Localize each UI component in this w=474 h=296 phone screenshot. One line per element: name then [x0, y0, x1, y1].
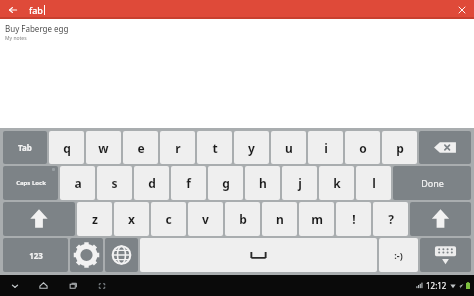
staticText: ?: [388, 211, 394, 227]
staticText: m: [311, 211, 323, 227]
button[interactable]: !: [336, 202, 371, 236]
button[interactable]: a: [60, 166, 95, 200]
button[interactable]: p: [382, 131, 417, 164]
staticText: !: [352, 211, 356, 227]
staticText: l: [372, 175, 376, 191]
staticText: f: [186, 175, 191, 191]
button[interactable]: q: [49, 131, 84, 164]
staticText: r: [175, 140, 181, 156]
staticText: Done: [421, 177, 444, 189]
staticText: p: [396, 140, 404, 156]
button[interactable]: Done: [393, 166, 471, 200]
staticText: y: [248, 140, 255, 156]
button[interactable]: Recent apps: [63, 276, 82, 295]
staticText: c: [165, 211, 172, 227]
button[interactable]: ?: [373, 202, 408, 236]
button[interactable]: Shift: [410, 202, 471, 236]
staticText: 123: [29, 250, 43, 261]
staticText: x: [128, 211, 135, 227]
button[interactable]: Tab: [3, 131, 47, 164]
button[interactable]: c: [151, 202, 186, 236]
button[interactable]: Space: [140, 238, 377, 272]
staticText: o: [359, 140, 367, 156]
staticText: t: [212, 140, 218, 156]
staticText: My notes: [5, 35, 27, 42]
button[interactable]: Expand screen: [92, 276, 111, 295]
staticText: q: [63, 140, 71, 156]
staticText: g: [222, 175, 230, 191]
button[interactable]: Backspace: [419, 131, 471, 164]
button[interactable]: Back: [5, 2, 20, 17]
button[interactable]: Home: [34, 276, 53, 295]
staticText: e: [137, 140, 145, 156]
button[interactable]: y: [234, 131, 269, 164]
staticText: Caps Lock: [16, 179, 46, 187]
button[interactable]: t: [197, 131, 232, 164]
staticText: Tab: [18, 142, 32, 153]
staticText: d: [148, 175, 156, 191]
button[interactable]: u: [271, 131, 306, 164]
button[interactable]: z: [77, 202, 112, 236]
button[interactable]: Clear search: [454, 2, 469, 17]
button[interactable]: m: [299, 202, 334, 236]
button[interactable]: Hide keyboard: [420, 238, 471, 272]
button[interactable]: o: [345, 131, 380, 164]
staticText: v: [202, 211, 209, 227]
button[interactable]: k: [319, 166, 354, 200]
button[interactable]: Change language: [105, 238, 138, 272]
staticText: u: [285, 140, 293, 156]
staticText: h: [259, 175, 267, 191]
button[interactable]: g: [208, 166, 243, 200]
button[interactable]: h: [245, 166, 280, 200]
button[interactable]: Back: [5, 276, 24, 295]
staticText: i: [324, 140, 328, 156]
button[interactable]: b: [225, 202, 260, 236]
button[interactable]: Caps Lock: [3, 166, 58, 200]
staticText: z: [92, 211, 98, 227]
staticText: n: [276, 211, 284, 227]
button[interactable]: r: [160, 131, 195, 164]
button[interactable]: e: [123, 131, 158, 164]
button[interactable]: Settings: [70, 238, 103, 272]
button[interactable]: 123: [3, 238, 68, 272]
button[interactable]: j: [282, 166, 317, 200]
staticText: s: [111, 175, 118, 191]
staticText: k: [333, 175, 341, 191]
button[interactable]: s: [97, 166, 132, 200]
staticText: 12:12: [426, 280, 447, 291]
staticText: j: [298, 175, 302, 191]
button[interactable]: v: [188, 202, 223, 236]
button[interactable]: l: [356, 166, 391, 200]
button[interactable]: x: [114, 202, 149, 236]
button[interactable]: f: [171, 166, 206, 200]
staticText: a: [74, 175, 82, 191]
staticText: w: [98, 140, 109, 156]
button[interactable]: Buy Faberge egg: [0, 19, 474, 46]
staticText: :-): [394, 249, 403, 261]
button[interactable]: n: [262, 202, 297, 236]
staticText: fab: [29, 4, 43, 16]
staticText: Buy Faberge egg: [5, 23, 69, 34]
button[interactable]: d: [134, 166, 169, 200]
button[interactable]: Shift: [3, 202, 75, 236]
button[interactable]: i: [308, 131, 343, 164]
button[interactable]: :-): [379, 238, 418, 272]
button[interactable]: w: [86, 131, 121, 164]
staticText: b: [239, 211, 247, 227]
